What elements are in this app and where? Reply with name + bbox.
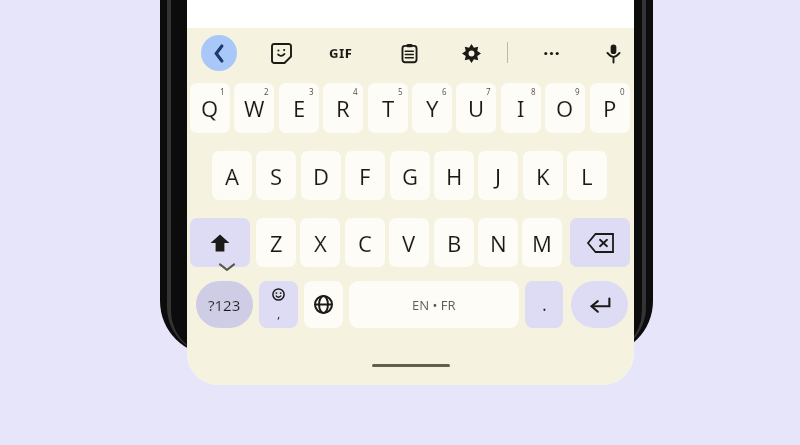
button[interactable]: I	[501, 83, 541, 133]
staticText: O	[556, 93, 574, 123]
staticText: M	[532, 228, 552, 258]
staticText: S	[270, 161, 283, 191]
staticText: Y	[426, 93, 439, 123]
button[interactable]: L	[567, 151, 607, 200]
button[interactable]: H	[434, 151, 474, 200]
button[interactable]: Change language	[304, 281, 343, 328]
button[interactable]: K	[523, 151, 563, 200]
staticText: U	[468, 93, 485, 123]
staticText: ?123	[208, 295, 241, 315]
staticText: 5	[398, 86, 403, 97]
staticText: X	[314, 228, 327, 258]
staticText: A	[225, 161, 240, 191]
button[interactable]: U	[456, 83, 496, 133]
button[interactable]: Emoji	[259, 281, 298, 328]
button[interactable]: Clipboard	[391, 35, 427, 71]
button[interactable]: Settings	[453, 35, 489, 71]
button[interactable]: ?123	[196, 281, 253, 328]
staticText: Q	[201, 93, 219, 123]
button[interactable]: T	[368, 83, 408, 133]
button[interactable]: More options	[533, 35, 569, 71]
button[interactable]: Z	[256, 218, 296, 267]
staticText: 9	[575, 86, 580, 97]
staticText: 8	[531, 86, 536, 97]
button[interactable]: Back	[201, 35, 237, 71]
button[interactable]: Backspace	[570, 218, 630, 267]
staticText: D	[313, 161, 330, 191]
staticText: G	[402, 161, 419, 191]
staticText: B	[447, 228, 462, 258]
staticText: W	[244, 93, 265, 123]
staticText: K	[536, 161, 550, 191]
staticText: 4	[353, 86, 358, 97]
button[interactable]: D	[301, 151, 341, 200]
button[interactable]: Hide keyboard	[213, 253, 241, 281]
staticText: 1	[220, 86, 225, 97]
button[interactable]: E	[279, 83, 319, 133]
button[interactable]: S	[256, 151, 296, 200]
staticText: R	[336, 93, 350, 123]
button[interactable]: EN • FR	[349, 281, 519, 328]
staticText: ,	[277, 304, 281, 322]
staticText: 0	[620, 86, 625, 97]
button[interactable]: Period	[525, 281, 563, 328]
button[interactable]: A	[212, 151, 252, 200]
button[interactable]: B	[434, 218, 474, 267]
staticText: 7	[486, 86, 491, 97]
button[interactable]: Stickers	[263, 35, 299, 71]
button[interactable]: M	[522, 218, 562, 267]
staticText: L	[581, 161, 593, 191]
button[interactable]: GIF	[323, 35, 359, 71]
staticText: Z	[270, 228, 283, 258]
staticText: 3	[309, 86, 314, 97]
button[interactable]: P	[590, 83, 630, 133]
staticText: P	[603, 93, 617, 123]
staticText: 2	[264, 86, 269, 97]
button[interactable]: Voice input	[595, 35, 631, 71]
button[interactable]: O	[545, 83, 585, 133]
staticText: 6	[442, 86, 447, 97]
staticText: J	[495, 161, 502, 191]
button[interactable]: N	[478, 218, 518, 267]
staticText: V	[402, 228, 416, 258]
button[interactable]: X	[300, 218, 340, 267]
button[interactable]: Shift	[190, 218, 250, 267]
button[interactable]: R	[323, 83, 363, 133]
staticText: H	[446, 161, 463, 191]
button[interactable]: J	[478, 151, 518, 200]
staticText: C	[358, 228, 372, 258]
staticText: .	[542, 292, 547, 317]
staticText: E	[293, 93, 306, 123]
button[interactable]: Q	[190, 83, 230, 133]
staticText: T	[382, 93, 395, 123]
staticText: GIF	[329, 44, 353, 62]
staticText: I	[517, 93, 525, 123]
staticText: F	[359, 161, 371, 191]
button[interactable]: V	[389, 218, 429, 267]
button[interactable]: F	[345, 151, 385, 200]
button[interactable]: C	[345, 218, 385, 267]
staticText: N	[490, 228, 507, 258]
button[interactable]: Enter	[571, 281, 628, 328]
staticText: EN • FR	[412, 296, 456, 314]
button[interactable]: G	[390, 151, 430, 200]
button[interactable]: Y	[412, 83, 452, 133]
button[interactable]: W	[234, 83, 274, 133]
